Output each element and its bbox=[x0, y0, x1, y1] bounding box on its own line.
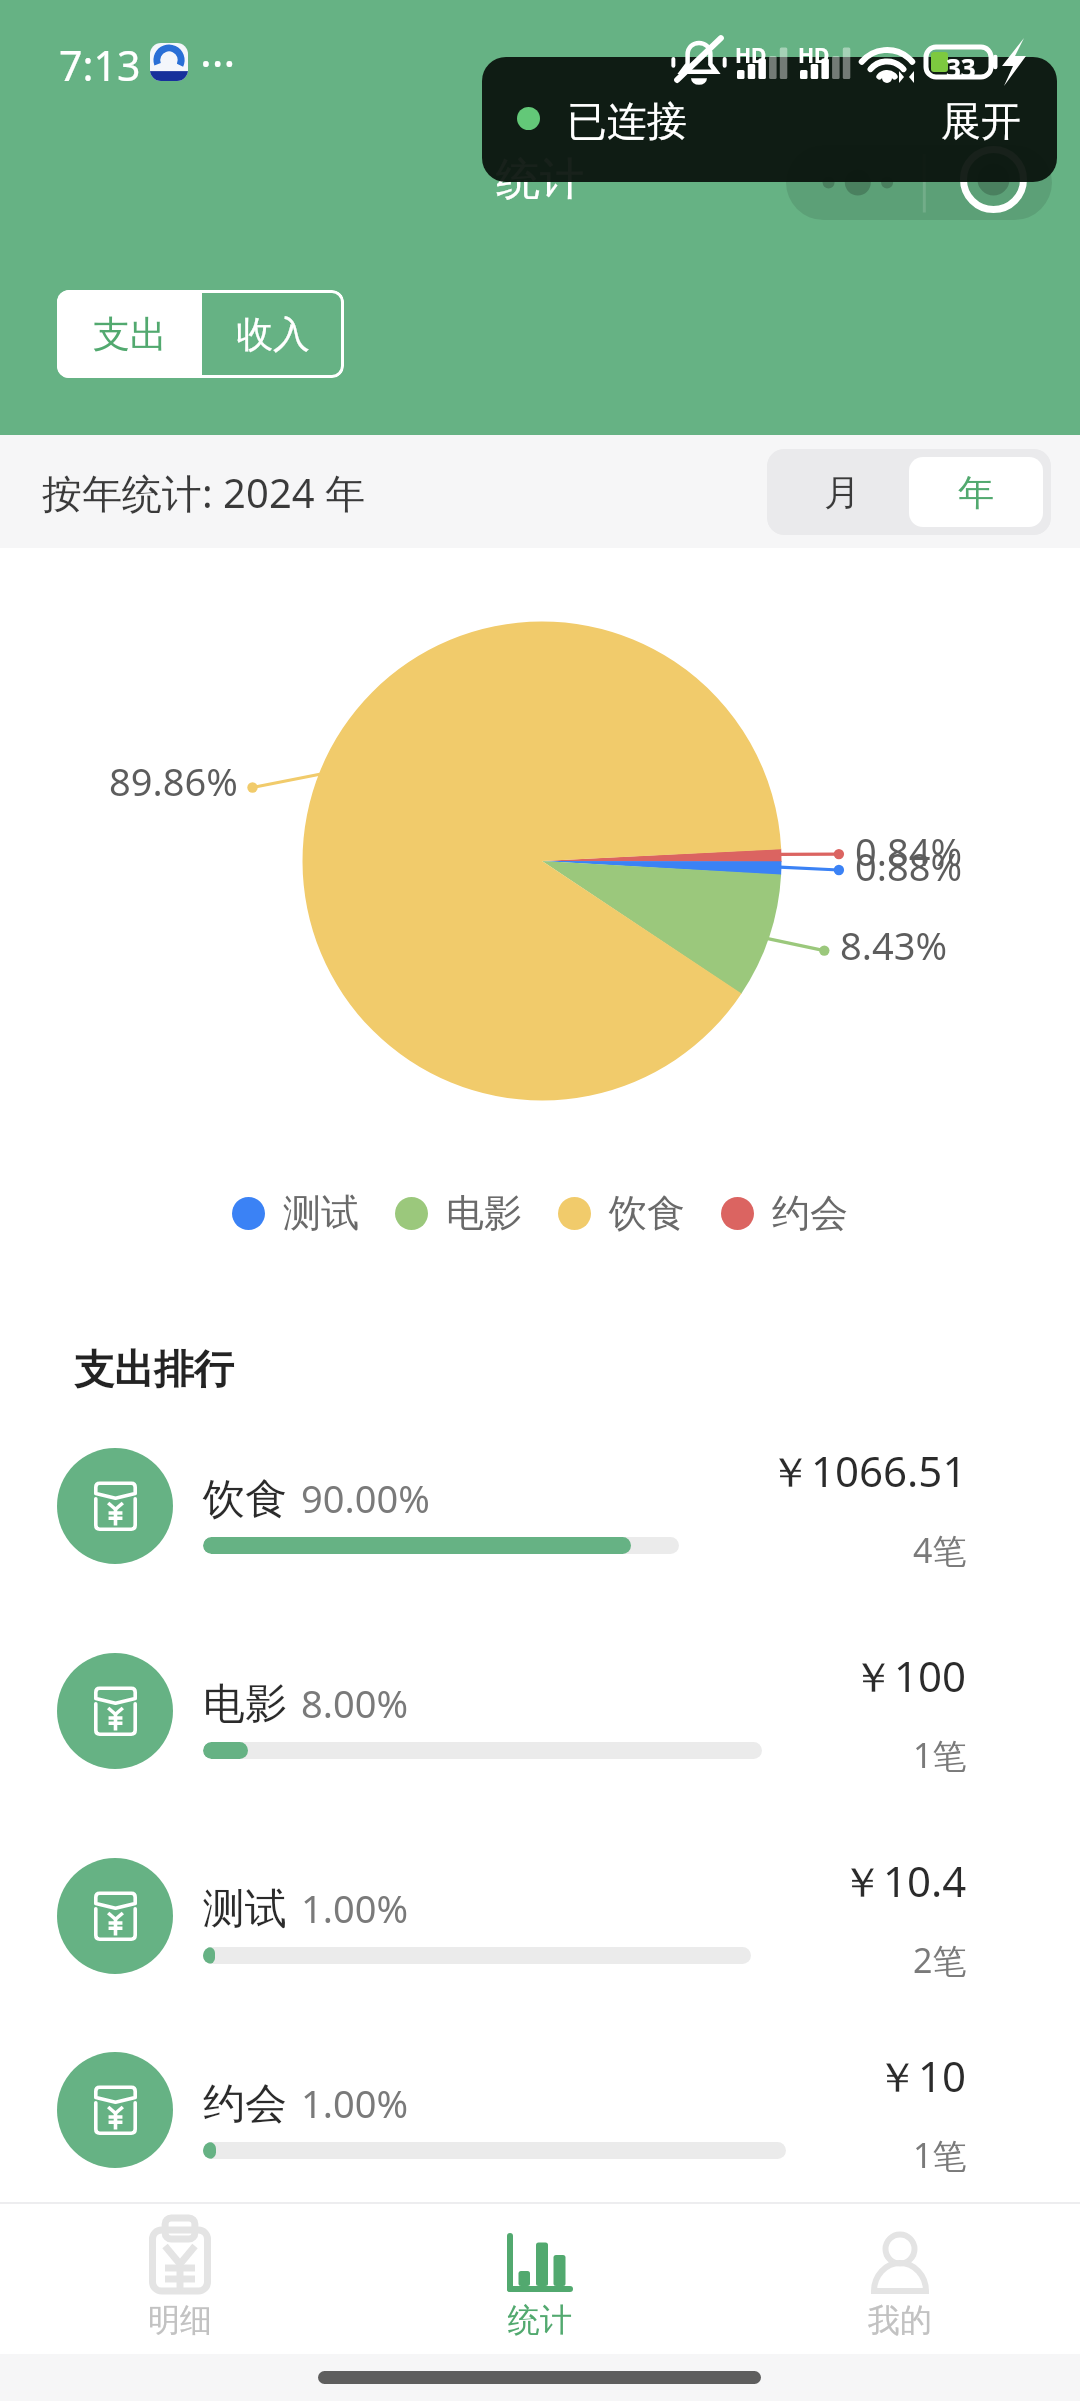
staticText: 展开 bbox=[941, 96, 1021, 146]
staticText: 饮食 bbox=[609, 1189, 685, 1237]
staticText: 约会 bbox=[772, 1189, 848, 1237]
staticText: 饮食 bbox=[203, 1473, 287, 1526]
staticText: 统计 bbox=[508, 2300, 572, 2340]
staticText: 2笔 bbox=[913, 1937, 967, 1983]
button[interactable]: 饮食 bbox=[0, 1403, 1080, 1608]
button[interactable]: 测试 bbox=[0, 1813, 1080, 2018]
staticText: 支出 bbox=[93, 311, 167, 358]
staticText: 7:13 bbox=[59, 37, 141, 93]
staticText: HD bbox=[735, 41, 767, 70]
staticText: 已连接 bbox=[567, 96, 687, 146]
staticText: 电影 bbox=[446, 1189, 522, 1237]
staticText: 8.00% bbox=[301, 1677, 408, 1729]
staticText: 4笔 bbox=[913, 1527, 967, 1573]
button[interactable]: 收入 bbox=[202, 290, 344, 378]
staticText: 统计 bbox=[496, 152, 584, 207]
staticText: ￥10 bbox=[876, 2047, 967, 2104]
staticText: 月 bbox=[824, 470, 860, 515]
staticText: 33 bbox=[946, 50, 976, 85]
staticText: ￥1066.51 bbox=[769, 1442, 967, 1499]
staticText: 8.43% bbox=[840, 919, 947, 971]
staticText: 年 bbox=[958, 470, 994, 515]
staticText: 电影 bbox=[203, 1678, 287, 1731]
staticText: 收入 bbox=[236, 311, 310, 358]
staticText: ￥10.4 bbox=[841, 1852, 967, 1909]
staticText: 0.88% bbox=[855, 840, 962, 892]
staticText: ￥100 bbox=[852, 1647, 967, 1704]
button[interactable]: 电影 bbox=[0, 1608, 1080, 1813]
staticText: 1.00% bbox=[301, 2077, 408, 2129]
button[interactable]: 明细 bbox=[0, 2204, 360, 2354]
staticText: 0.84% bbox=[855, 825, 962, 877]
staticText: HD bbox=[798, 41, 830, 70]
staticText: 支出排行 bbox=[74, 1344, 234, 1394]
staticText: 我的 bbox=[868, 2300, 932, 2340]
staticText: 1笔 bbox=[913, 2132, 967, 2178]
button[interactable]: 约会 bbox=[0, 2018, 1080, 2202]
staticText: 按年统计: 2024 年 bbox=[42, 465, 366, 520]
button[interactable]: 我的 bbox=[720, 2204, 1080, 2354]
staticText: 测试 bbox=[283, 1189, 359, 1237]
button[interactable]: 统计 bbox=[360, 2204, 720, 2354]
staticText: ··· bbox=[200, 33, 236, 93]
staticText: 89.86% bbox=[109, 755, 238, 807]
staticText: 明细 bbox=[148, 2300, 212, 2340]
staticText: 测试 bbox=[203, 1883, 287, 1936]
button[interactable]: 年 bbox=[909, 457, 1043, 527]
staticText: 90.00% bbox=[301, 1472, 430, 1524]
staticText: 1.00% bbox=[301, 1882, 408, 1934]
button[interactable]: 支出 bbox=[57, 290, 202, 378]
staticText: 1笔 bbox=[913, 1732, 967, 1778]
staticText: 约会 bbox=[203, 2078, 287, 2131]
button[interactable]: 已连接 bbox=[482, 57, 1057, 182]
button[interactable]: 月 bbox=[775, 457, 909, 527]
